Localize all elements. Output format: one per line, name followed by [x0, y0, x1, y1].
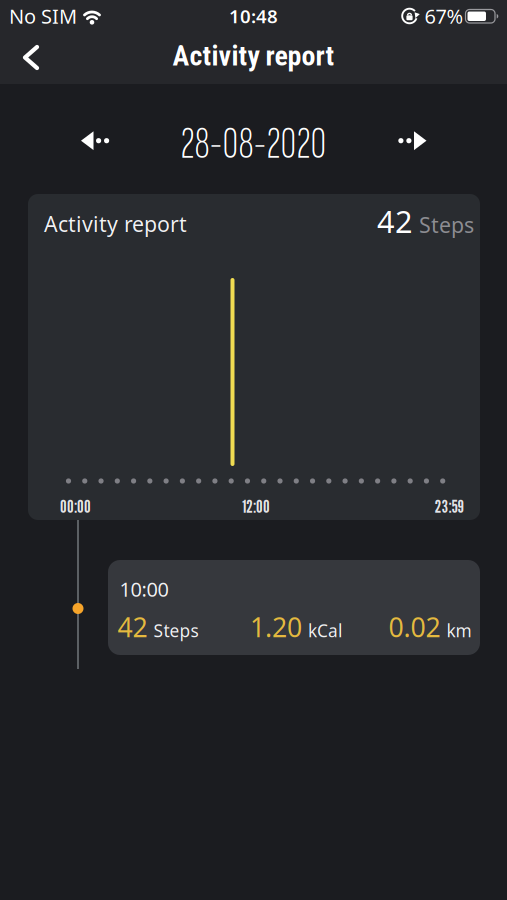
staticText: 1.20 — [250, 609, 302, 645]
staticText: No SIM — [9, 3, 77, 29]
button[interactable] — [22, 45, 40, 69]
staticText: Steps — [419, 210, 474, 239]
button[interactable] — [81, 130, 110, 152]
staticText: 12:00 — [242, 495, 270, 517]
staticText: km — [446, 619, 471, 642]
staticText: kCal — [308, 619, 342, 642]
staticText: 10:00 — [119, 576, 168, 602]
staticText: 42 — [117, 609, 147, 645]
staticText: 00:00 — [60, 495, 91, 517]
staticText: Steps — [153, 619, 198, 642]
button[interactable] — [397, 130, 426, 152]
staticText: 23:59 — [434, 495, 463, 517]
staticText: 42 — [377, 201, 413, 241]
staticText: 67% — [424, 3, 463, 29]
staticText: Activity report — [44, 209, 187, 238]
staticText: 28-08-2020 — [180, 118, 326, 171]
staticText: 0.02 — [388, 609, 440, 645]
staticText: Activity report — [172, 40, 334, 72]
staticText: 10:48 — [229, 4, 278, 28]
